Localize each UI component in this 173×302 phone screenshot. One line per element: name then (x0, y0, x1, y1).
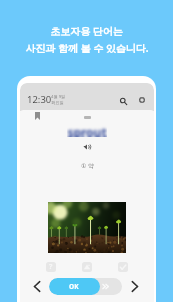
staticText: 초보자용 단어는 (50, 24, 123, 38)
staticText: OK (69, 282, 79, 291)
button[interactable]: Done (118, 262, 128, 272)
button[interactable]: Search (117, 95, 129, 107)
staticText: 12:30 (27, 93, 52, 106)
button[interactable]: Settings (136, 94, 148, 106)
staticText: 화요일 (51, 100, 64, 105)
staticText: 사진과 함께 볼 수 있습니다. (25, 41, 149, 55)
staticText: 4월 9일 (51, 94, 66, 100)
button[interactable]: Play pronunciation (83, 144, 91, 150)
button[interactable]: OK (49, 278, 122, 295)
button[interactable]: Next (129, 279, 141, 293)
button[interactable]: Help (46, 262, 56, 272)
staticText: ? (49, 262, 53, 272)
button[interactable]: Previous (31, 279, 43, 293)
button[interactable]: Image (82, 262, 92, 272)
staticText: ① 약 (81, 162, 94, 170)
staticText: sprout (67, 124, 107, 137)
